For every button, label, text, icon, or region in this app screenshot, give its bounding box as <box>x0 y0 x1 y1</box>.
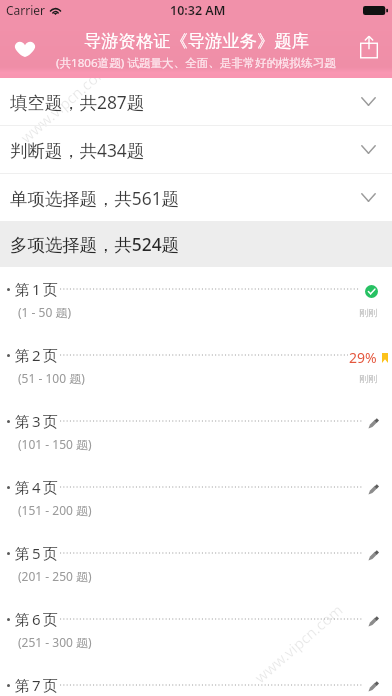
staticText: 第 6 页 <box>15 609 57 629</box>
staticText: 第 2 页 <box>15 345 57 365</box>
button[interactable]: 判断题，共434题 <box>0 126 392 173</box>
button[interactable]: 填空题，共287题 <box>0 78 392 125</box>
button[interactable]: 第 4 页 <box>0 465 392 531</box>
staticText: 判断题，共434题 <box>10 138 145 162</box>
button[interactable]: Favorite <box>6 30 44 68</box>
staticText: 第 5 页 <box>15 543 57 563</box>
button[interactable]: 单项选择题，共561题 <box>0 174 392 221</box>
staticText: 填空题，共287题 <box>10 90 145 114</box>
staticText: (51 - 100 题) <box>18 370 85 386</box>
button[interactable]: 第 3 页 <box>0 399 392 465</box>
staticText: 刚刚 <box>359 307 377 318</box>
staticText: 多项选择题，共524题 <box>10 232 179 256</box>
staticText: 第 7 页 <box>15 675 57 695</box>
button[interactable]: Share <box>349 27 389 67</box>
staticText: 29% <box>349 348 377 367</box>
staticText: (1 - 50 题) <box>18 304 72 320</box>
staticText: 第 3 页 <box>15 411 57 431</box>
staticText: (151 - 200 题) <box>18 502 92 518</box>
button[interactable]: 第 6 页 <box>0 597 392 663</box>
staticText: 第 1 页 <box>15 279 57 299</box>
button[interactable]: 第 7 页 <box>0 663 392 696</box>
staticText: 10:32 AM <box>170 2 226 19</box>
staticText: 刚刚 <box>359 373 377 384</box>
staticText: (共1806道题) 试题量大、全面、是非常好的模拟练习题 <box>56 55 336 71</box>
staticText: 第 4 页 <box>15 477 57 497</box>
staticText: Carrier <box>6 2 46 18</box>
button[interactable]: 第 2 页 <box>0 333 392 399</box>
button[interactable]: 第 1 页 <box>0 267 392 333</box>
button[interactable]: 第 5 页 <box>0 531 392 597</box>
staticText: 导游资格证《导游业务》题库 <box>84 30 309 52</box>
staticText: (251 - 300 题) <box>18 634 92 650</box>
staticText: (201 - 250 题) <box>18 568 92 584</box>
staticText: 单项选择题，共561题 <box>10 186 179 210</box>
staticText: (101 - 150 题) <box>18 436 92 452</box>
